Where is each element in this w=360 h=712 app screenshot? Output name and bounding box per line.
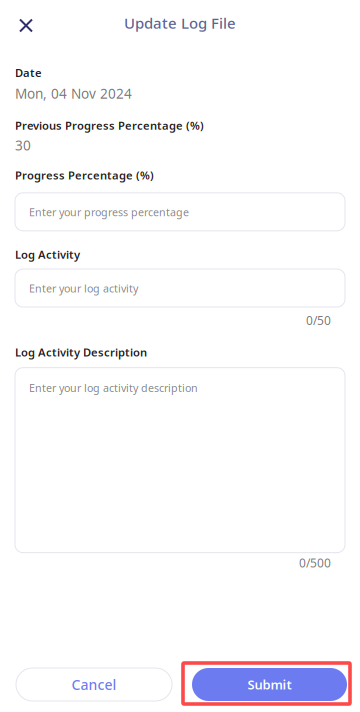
button[interactable]: Enter your log activity description [15,368,345,553]
staticText: 30 [15,136,31,154]
button[interactable]: Submit [183,663,350,704]
staticText: Log Activity [15,247,80,262]
staticText: 0/500 [299,555,331,571]
staticText: Cancel [71,675,116,694]
staticText: Previous Progress Percentage (%) [15,118,204,133]
staticText: 0/50 [306,312,331,328]
staticText: Enter your log activity description [29,381,198,395]
button[interactable]: Close [6,3,46,43]
button[interactable]: Enter your progress percentage [15,193,345,231]
staticText: Enter your log activity [29,281,138,296]
staticText: Submit [247,676,291,693]
button[interactable]: Cancel [16,668,172,701]
button[interactable]: Enter your log activity [15,269,345,307]
staticText: Mon, 04 Nov 2024 [15,84,132,103]
staticText: Log Activity Description [15,344,147,360]
staticText: Update Log File [124,13,236,33]
staticText: Progress Percentage (%) [15,168,154,183]
staticText: Enter your progress percentage [29,205,189,219]
staticText: Date [15,65,42,80]
